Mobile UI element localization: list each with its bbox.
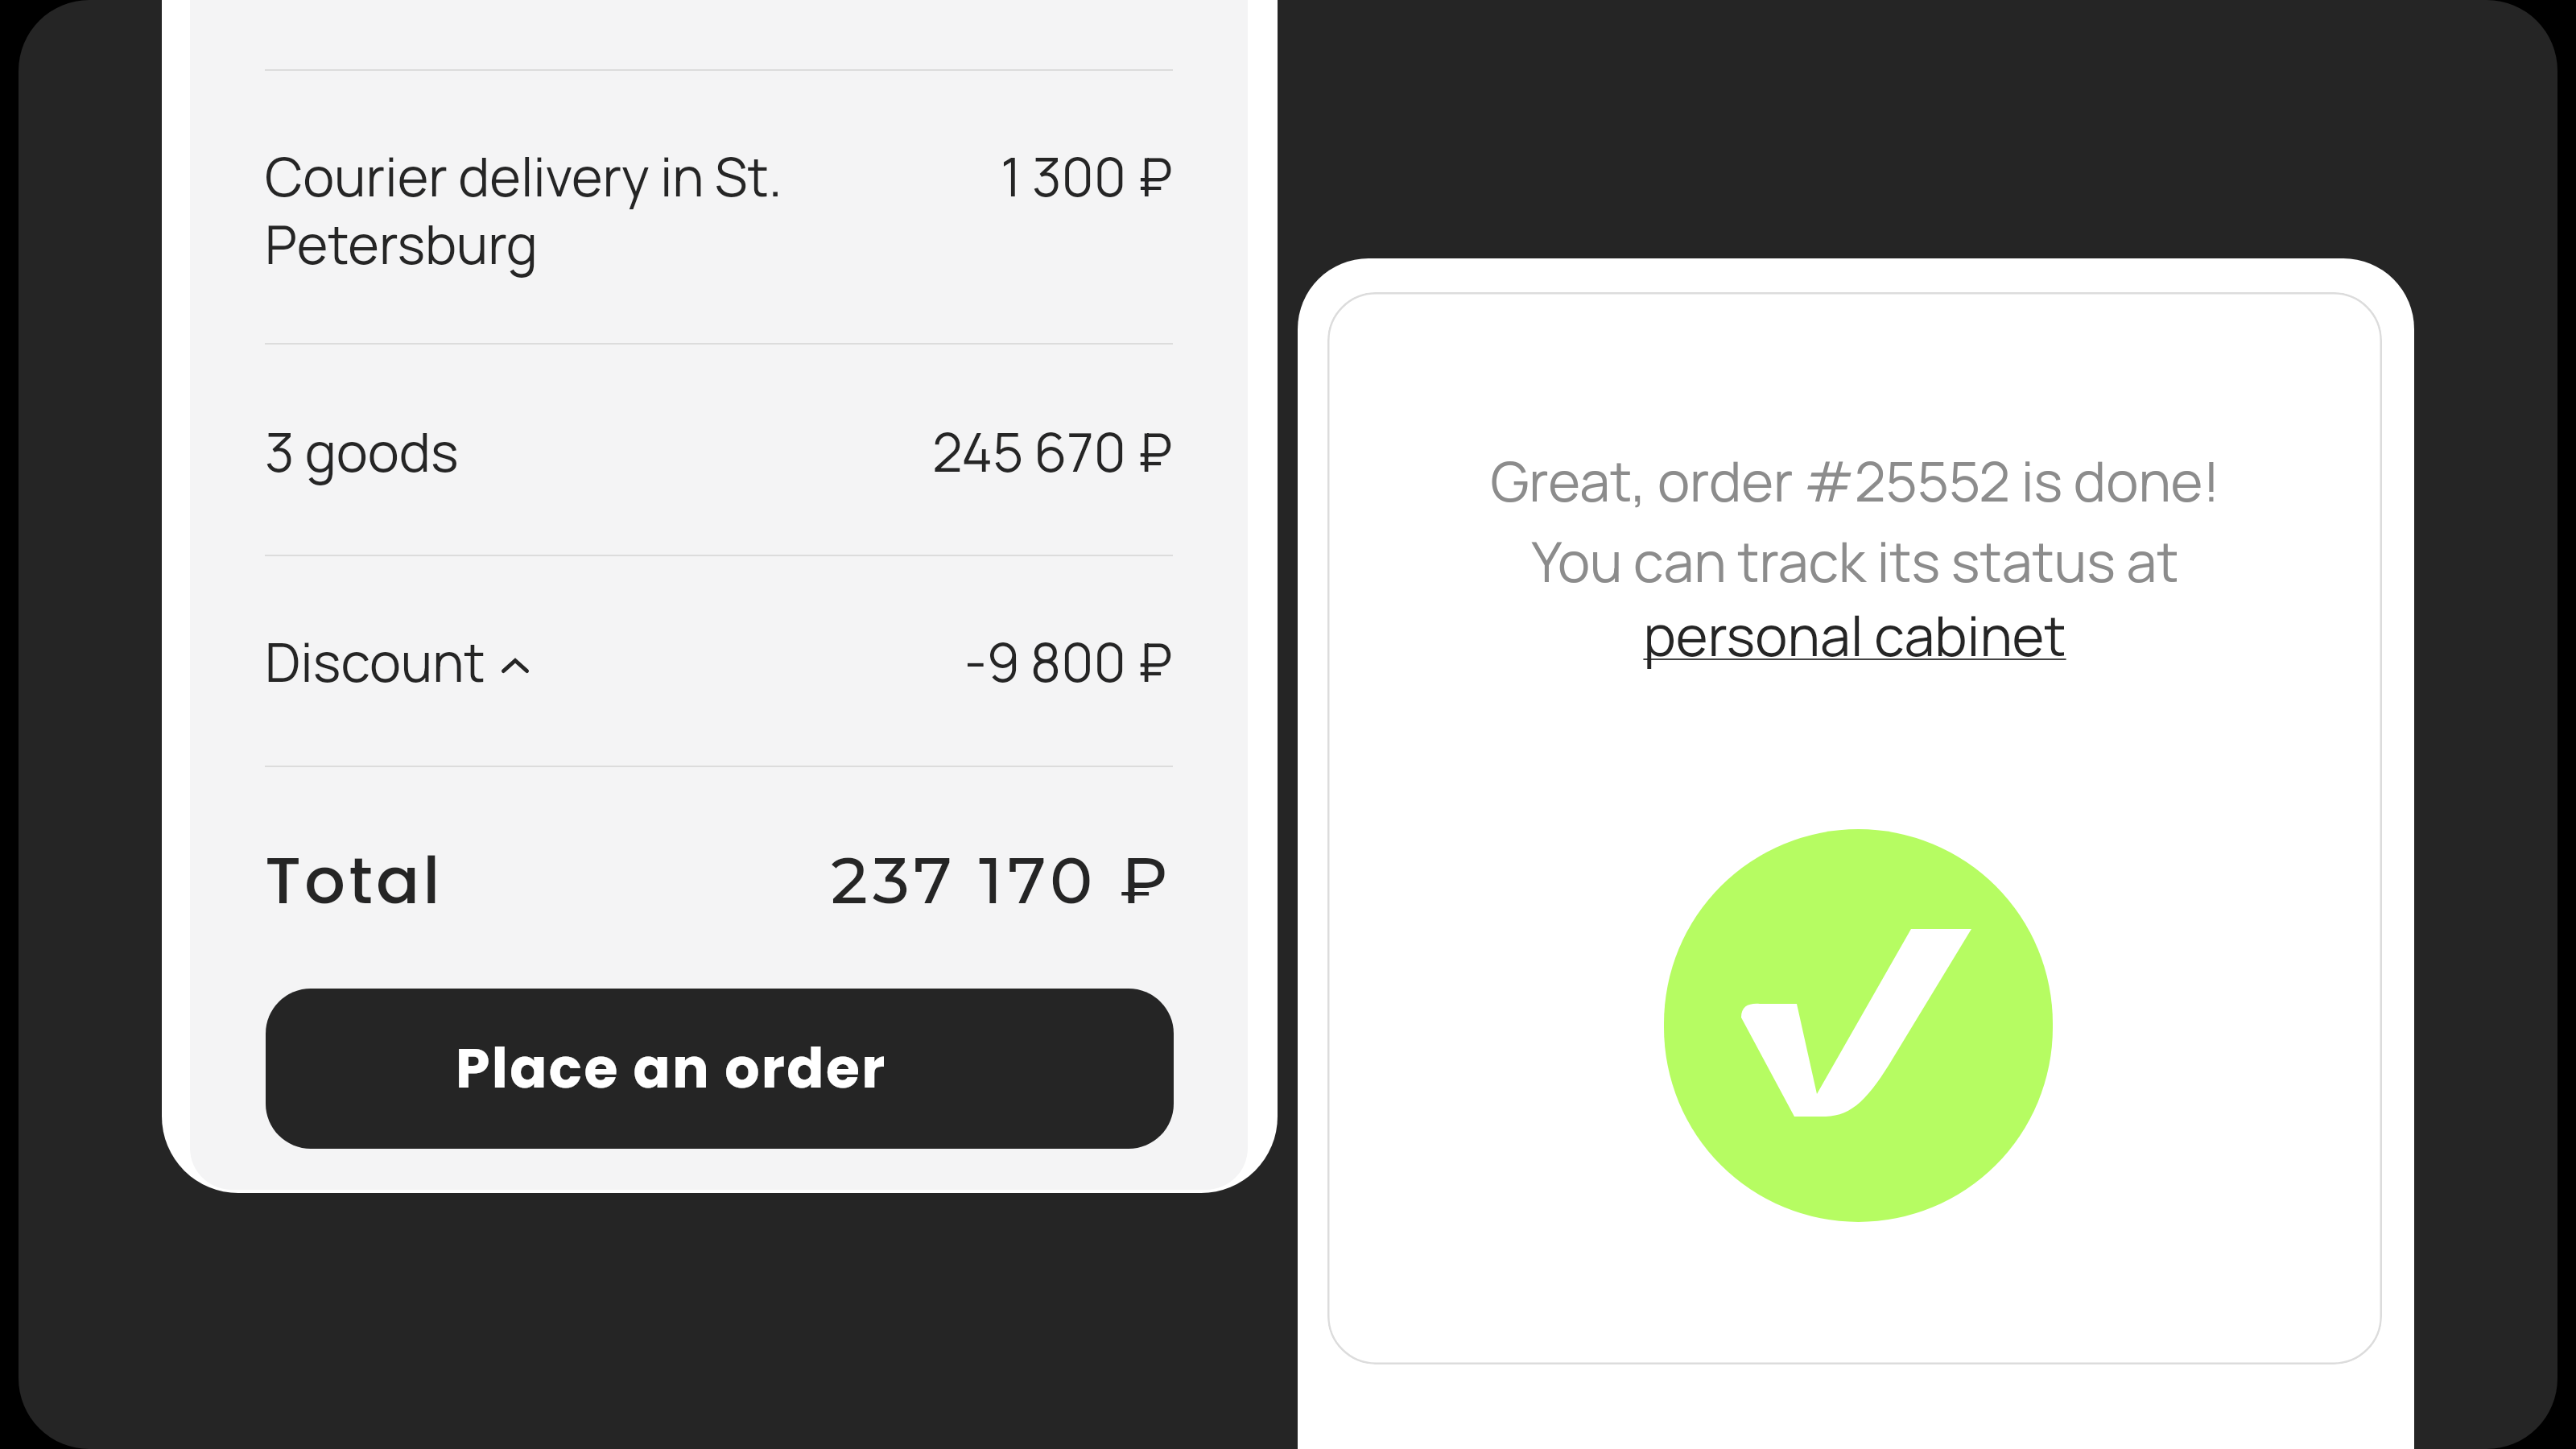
other: Collapse discount details <box>505 629 532 695</box>
staticText: Total <box>265 836 444 926</box>
staticText: Great, order #25552 is done! You can tra… <box>1490 444 2220 598</box>
staticText: -9 800 ₽ <box>964 625 1173 698</box>
button[interactable]: Place an order <box>266 989 1174 1149</box>
staticText: Courier delivery in St. Petersburg <box>265 140 828 280</box>
staticText: 237 170 ₽ <box>831 841 1173 920</box>
button[interactable]: personal cabinet <box>1643 598 2066 673</box>
staticText: 1 300 ₽ <box>1001 140 1173 213</box>
staticText: Discount <box>265 625 485 698</box>
staticText: 245 670 ₽ <box>932 415 1173 488</box>
staticText: Place an order <box>456 1030 887 1107</box>
staticText: personal cabinet <box>1643 598 2066 673</box>
staticText: 3 goods <box>265 415 459 488</box>
button[interactable]: Discount <box>265 625 532 698</box>
